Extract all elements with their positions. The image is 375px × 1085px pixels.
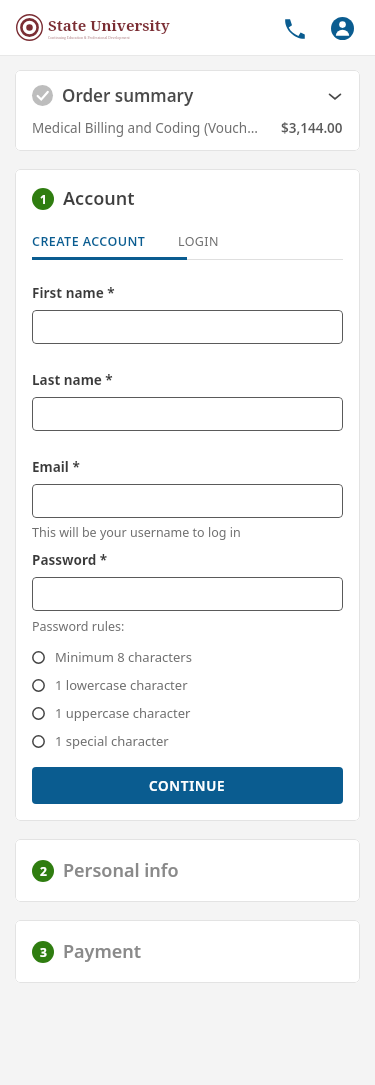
button[interactable]: LOGIN xyxy=(178,233,219,259)
staticText: CONTINUE xyxy=(149,777,226,795)
staticText: Minimum 8 characters xyxy=(55,648,192,666)
staticText: $3,144.00 xyxy=(281,119,343,137)
button[interactable]: CONTINUE xyxy=(32,767,343,804)
button[interactable]: CREATE ACCOUNT xyxy=(32,233,150,259)
staticText: Email * xyxy=(32,458,80,476)
staticText: Order summary xyxy=(62,84,194,107)
staticText: Last name * xyxy=(32,371,113,389)
button[interactable]: 3 xyxy=(15,920,360,983)
staticText: Account xyxy=(63,186,135,211)
button[interactable]: Account xyxy=(325,11,359,45)
staticText: Password rules: xyxy=(32,618,125,635)
staticText: 1 xyxy=(40,191,47,207)
staticText: 1 special character xyxy=(55,732,169,750)
staticText: This will be your username to log in xyxy=(32,524,241,541)
staticText: Personal info xyxy=(63,858,179,883)
button[interactable]: Call us xyxy=(277,11,311,45)
staticText: 2 xyxy=(40,863,47,879)
staticText: 3 xyxy=(40,944,47,960)
button[interactable]: Order summary xyxy=(15,70,360,151)
button[interactable] xyxy=(32,577,343,611)
staticText: Continuing Education & Professional Deve… xyxy=(48,35,130,40)
staticText: Payment xyxy=(63,939,142,964)
button[interactable]: 2 xyxy=(15,839,360,902)
button[interactable] xyxy=(32,484,343,518)
staticText: Medical Billing and Coding (Vouch… xyxy=(32,119,273,137)
staticText: State University xyxy=(48,15,170,35)
staticText: 1 uppercase character xyxy=(55,704,191,722)
button[interactable] xyxy=(32,397,343,431)
staticText: Password * xyxy=(32,551,108,569)
button[interactable]: State University xyxy=(16,14,170,41)
staticText: First name * xyxy=(32,284,115,302)
staticText: 1 lowercase character xyxy=(55,676,188,694)
staticText: LOGIN xyxy=(178,233,219,250)
staticText: CREATE ACCOUNT xyxy=(32,233,146,250)
button[interactable] xyxy=(32,310,343,344)
